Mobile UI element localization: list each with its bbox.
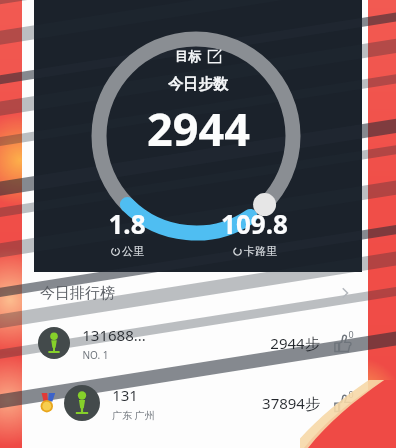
staticText: 公里 (122, 244, 144, 258)
staticText: 0 (348, 328, 354, 340)
staticText: NO. 1 (82, 348, 109, 362)
staticText: 卡路里 (244, 244, 277, 258)
button[interactable]: Like (330, 391, 354, 415)
staticText: 0 (348, 388, 354, 400)
staticText: 广东 广州 (112, 408, 155, 422)
staticText: 131688... (82, 325, 146, 345)
staticText: 今日排行榜 (40, 284, 115, 303)
staticText: 37894步 (262, 393, 320, 413)
button[interactable]: 目标 (171, 46, 226, 66)
button[interactable]: 131688... (22, 314, 368, 372)
staticText: 今日步数 (168, 75, 228, 94)
staticText: 2944 (147, 98, 250, 159)
staticText: 目标 (175, 48, 201, 64)
button[interactable]: 今日排行榜 (22, 272, 368, 314)
staticText: 1.8 (108, 206, 146, 241)
button[interactable]: 131 (22, 372, 368, 434)
staticText: 109.8 (221, 206, 288, 241)
button[interactable]: Like (330, 331, 354, 355)
staticText: 2944步 (270, 333, 320, 353)
staticText: 131 (112, 385, 138, 405)
